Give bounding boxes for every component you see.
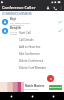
staticText: Conference Caller [2,5,36,10]
staticText: Match Masters [25,84,45,88]
button[interactable]: Reji [0,17,64,26]
staticText: Conference 1 [10,33,25,35]
button[interactable]: Renjith [0,26,64,35]
staticText: Add to Favorites [19,45,41,49]
staticText: Start Call [19,31,31,35]
staticText: Reji [10,17,16,21]
staticText: Edit Conference [19,52,40,56]
staticText: Conference 1 [10,24,25,26]
button[interactable]: Back [0,92,22,100]
button[interactable]: Delete Conference [17,57,51,64]
staticText: DOWNLOAD [49,86,62,89]
staticText: CONFERENCE MEMBERS [2,12,32,16]
button[interactable]: More options [58,5,64,11]
staticText: Delete Conf Member [19,66,47,70]
staticText: Renjith [10,26,21,30]
staticText: +91 9895 XXXXXX [10,21,31,24]
button[interactable]: Add participant [44,4,51,11]
button[interactable]: DOWNLOAD [49,85,62,90]
button[interactable]: Edit Conference [17,50,51,57]
staticText: Delete Conference [19,59,44,63]
staticText: Puzzle Game [25,88,39,91]
button[interactable]: Start Call [17,29,51,36]
button[interactable]: Recents [43,92,64,100]
button[interactable]: Call [51,4,58,11]
button[interactable]: Delete Conf Member [17,64,51,71]
button[interactable]: Add conference [47,75,54,82]
button[interactable]: Add to Favorites [17,43,51,50]
staticText: Call Details [19,38,34,42]
staticText: +91 9846 XXXXXX [10,30,31,33]
button[interactable]: Home [22,92,43,100]
button[interactable]: Call Details [17,36,51,43]
